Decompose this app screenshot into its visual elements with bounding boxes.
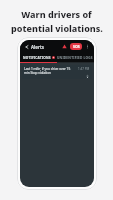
staticText: Alerts xyxy=(31,44,44,50)
button[interactable]: Back xyxy=(23,43,30,50)
button[interactable]: Dismiss alert xyxy=(85,75,90,77)
staticText: potential violations. xyxy=(11,22,103,34)
staticText: SOS xyxy=(73,44,80,49)
staticText: Last 1 mile; if you drive over 15 min St… xyxy=(24,67,77,75)
button[interactable]: Last 1 mile; if you drive over 15 min St… xyxy=(22,65,92,79)
button[interactable]: UNIDENTIFIED LOGS xyxy=(57,53,94,62)
staticText: NOTIFICATIONS xyxy=(23,56,51,60)
button[interactable]: Warnings xyxy=(61,43,68,50)
staticText: Warn drivers of xyxy=(21,8,92,20)
button[interactable]: SOS xyxy=(70,43,82,50)
staticText: 1 xyxy=(53,56,55,59)
button[interactable]: NOTIFICATIONS xyxy=(20,53,57,62)
button[interactable]: More options xyxy=(84,43,91,50)
staticText: UNIDENTIFIED LOGS xyxy=(57,56,93,60)
staticText: 1:47 PM xyxy=(78,67,90,71)
